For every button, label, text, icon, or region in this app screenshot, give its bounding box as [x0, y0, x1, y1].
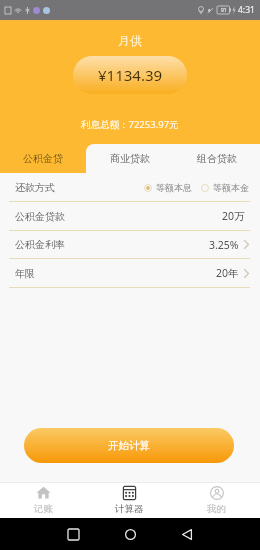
- button[interactable]: 商业贷款: [86, 144, 173, 173]
- button[interactable]: 记账: [0, 482, 86, 518]
- staticText: 商业贷款: [110, 152, 150, 165]
- staticText: 开始计算: [108, 439, 150, 452]
- staticText: 20年: [216, 266, 239, 280]
- button[interactable]: 计算器: [86, 482, 173, 518]
- button[interactable]: 公积金贷: [0, 144, 86, 173]
- button[interactable]: 我的: [173, 482, 260, 518]
- staticText: 还款方式: [15, 181, 55, 194]
- button[interactable]: Recents: [62, 523, 84, 545]
- button[interactable]: ¥1134.39: [73, 56, 187, 94]
- staticText: 20万: [222, 209, 245, 223]
- staticText: 我的: [207, 503, 226, 515]
- button[interactable]: Back: [176, 523, 198, 545]
- staticText: 公积金贷: [23, 152, 63, 165]
- staticText: 利息总额：72253.97元: [81, 118, 179, 131]
- staticText: 组合贷款: [197, 152, 237, 165]
- button[interactable]: 开始计算: [24, 428, 234, 463]
- staticText: 月供: [118, 33, 142, 48]
- staticText: 公积金利率: [15, 238, 65, 251]
- staticText: ¥1134.39: [98, 65, 163, 85]
- staticText: 3.25%: [209, 238, 239, 252]
- button[interactable]: 公积金利率: [0, 231, 260, 258]
- button[interactable]: 等额本金: [201, 182, 249, 193]
- button[interactable]: 等额本息: [144, 182, 192, 193]
- button[interactable]: Home: [119, 523, 141, 545]
- staticText: 计算器: [115, 503, 144, 515]
- staticText: 等额本息: [156, 182, 192, 193]
- staticText: 记账: [34, 503, 53, 515]
- staticText: 年限: [15, 267, 35, 280]
- staticText: 等额本金: [213, 182, 249, 193]
- staticText: 91: [221, 7, 227, 14]
- staticText: 公积金贷款: [15, 210, 65, 223]
- button[interactable]: 年限: [0, 259, 260, 287]
- button[interactable]: 组合贷款: [173, 144, 260, 173]
- button[interactable]: 公积金贷款: [0, 202, 260, 230]
- staticText: 4:31: [238, 4, 255, 16]
